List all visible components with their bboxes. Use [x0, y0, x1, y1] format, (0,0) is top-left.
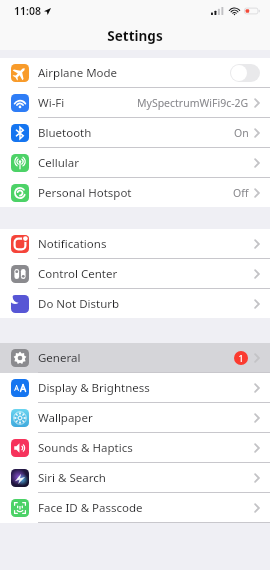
staticText: Wi-Fi	[38, 95, 65, 111]
staticText: Notifications	[38, 236, 107, 252]
button[interactable]: Display & Brightness	[0, 373, 270, 403]
button[interactable]: Airplane Mode	[0, 58, 270, 88]
button[interactable]: Control Center	[0, 259, 270, 289]
staticText: Cellular	[38, 155, 79, 171]
staticText: Airplane Mode	[38, 65, 118, 81]
button[interactable]: Airplane Mode toggle	[230, 64, 260, 82]
staticText: Control Center	[38, 266, 118, 282]
staticText: 1	[238, 352, 244, 364]
button[interactable]: Wallpaper	[0, 403, 270, 433]
button[interactable]: Face ID & Passcode	[0, 493, 270, 523]
staticText: On	[234, 126, 249, 140]
staticText: Face ID & Passcode	[38, 500, 143, 516]
staticText: Settings	[107, 27, 163, 45]
staticText: Wallpaper	[38, 410, 93, 426]
staticText: Bluetooth	[38, 125, 92, 141]
button[interactable]: Do Not Disturb	[0, 289, 270, 318]
button[interactable]: Wi-Fi	[0, 88, 270, 118]
button[interactable]: Siri & Search	[0, 463, 270, 493]
staticText: General	[38, 350, 81, 366]
staticText: Sounds & Haptics	[38, 440, 133, 456]
button[interactable]: Personal Hotspot	[0, 178, 270, 207]
button[interactable]: Notifications	[0, 229, 270, 259]
staticText: Display & Brightness	[38, 380, 150, 396]
button[interactable]: Cellular	[0, 148, 270, 178]
staticText: Do Not Disturb	[38, 296, 120, 312]
staticText: Siri & Search	[38, 470, 106, 486]
button[interactable]: Bluetooth	[0, 118, 270, 148]
staticText: 11:08	[14, 4, 41, 18]
staticText: MySpectrumWiFi9c-2G	[137, 96, 249, 110]
button[interactable]: Sounds & Haptics	[0, 433, 270, 463]
button[interactable]: General	[0, 343, 270, 373]
staticText: Off	[233, 186, 249, 200]
staticText: Personal Hotspot	[38, 185, 132, 201]
